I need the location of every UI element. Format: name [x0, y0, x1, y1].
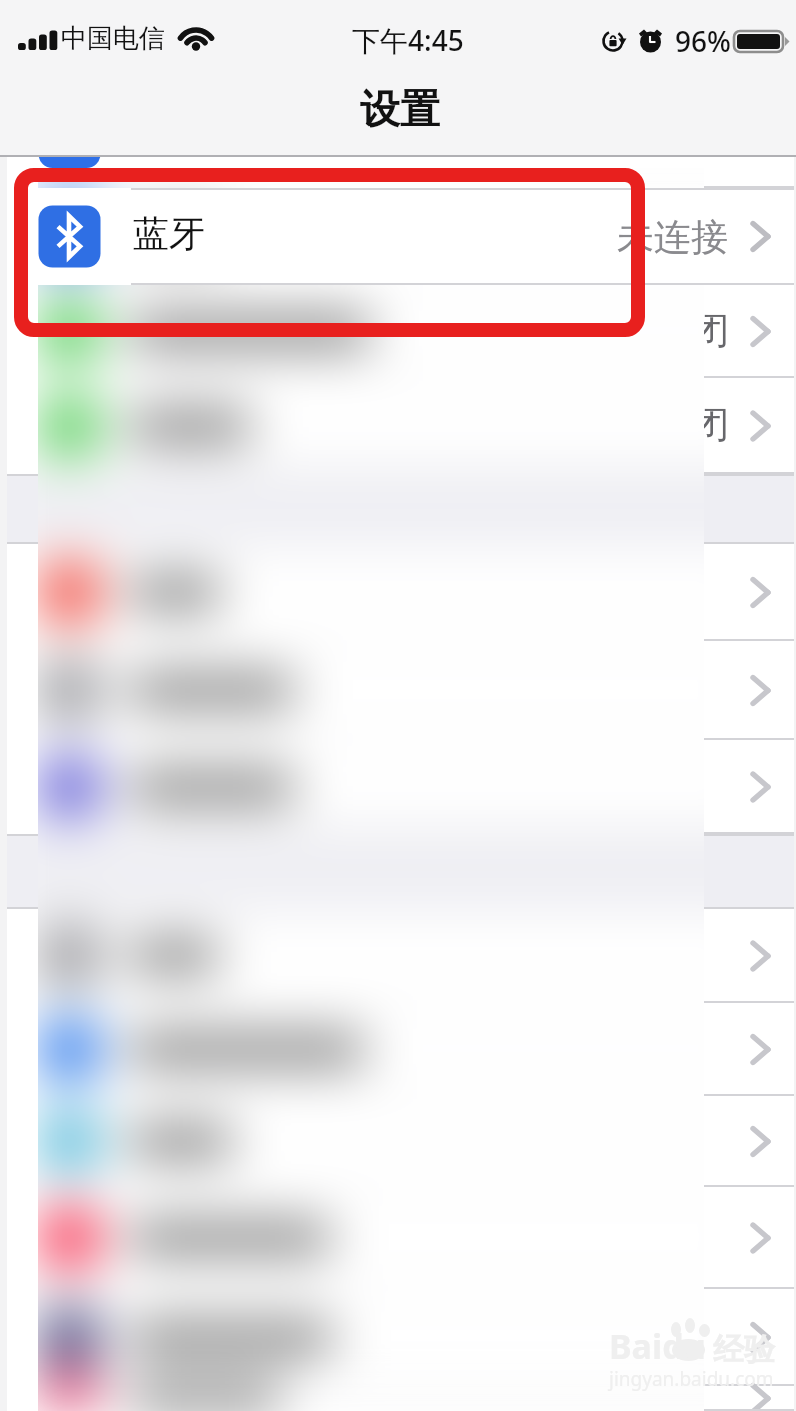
staticText: Baidu	[609, 1323, 706, 1369]
staticText: 下午4:45	[352, 21, 464, 59]
button[interactable]	[0, 544, 796, 641]
button[interactable]: 蓝牙	[0, 188, 796, 285]
button[interactable]	[0, 1187, 796, 1289]
button[interactable]	[38, 378, 704, 474]
button[interactable]	[0, 1003, 796, 1096]
button[interactable]	[0, 740, 796, 834]
button[interactable]	[38, 1187, 704, 1289]
button[interactable]	[0, 1289, 796, 1386]
staticText: 设置	[360, 84, 440, 134]
button[interactable]	[38, 1386, 704, 1411]
button[interactable]	[0, 641, 796, 740]
button[interactable]	[0, 1386, 796, 1411]
button[interactable]	[38, 909, 704, 1003]
button[interactable]	[38, 740, 704, 834]
other: Highlighted Bluetooth setting	[0, 0, 796, 1411]
button[interactable]	[0, 378, 796, 474]
button[interactable]	[38, 285, 704, 378]
button[interactable]	[0, 909, 796, 1003]
button[interactable]	[38, 188, 704, 285]
staticText: 蓝牙	[133, 211, 205, 256]
staticText: 中国电信	[61, 22, 165, 55]
button[interactable]	[38, 641, 704, 740]
button[interactable]	[38, 1003, 704, 1096]
button[interactable]	[38, 1096, 704, 1187]
staticText: 96%	[675, 22, 731, 60]
staticText: 关闭	[704, 306, 729, 354]
staticText: 关闭	[704, 400, 729, 448]
button[interactable]	[0, 1096, 796, 1187]
staticText: 经验	[713, 1330, 775, 1369]
staticText: 未连接	[617, 214, 728, 261]
button[interactable]	[0, 188, 796, 285]
button[interactable]	[0, 285, 796, 378]
staticText: jingyan.baidu.com	[609, 1366, 774, 1392]
button[interactable]	[38, 544, 704, 641]
button[interactable]	[38, 1289, 704, 1386]
